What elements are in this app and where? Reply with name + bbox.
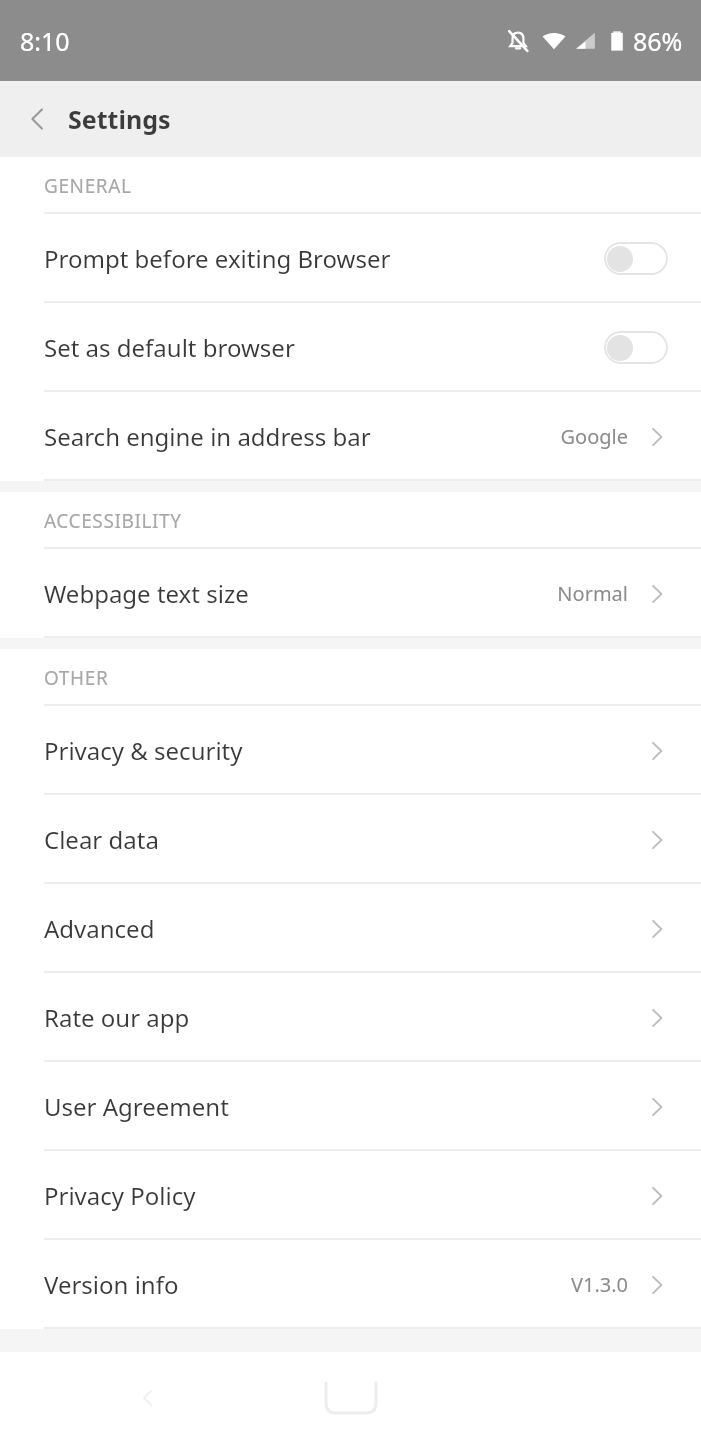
staticText: Clear data	[44, 823, 646, 856]
staticText: Prompt before exiting Browser	[44, 242, 604, 275]
button[interactable]: Rate our app	[0, 973, 701, 1062]
staticText: Version info	[44, 1268, 570, 1301]
staticText: V1.3.0	[570, 1271, 628, 1298]
button[interactable]: Home	[321, 1372, 381, 1424]
staticText: 86%	[633, 24, 683, 58]
staticText: Advanced	[44, 912, 646, 945]
button[interactable]: Clear data	[0, 795, 701, 884]
button[interactable]: Search engine in address bar	[0, 392, 701, 481]
button[interactable]: Toggle	[604, 331, 668, 364]
button[interactable]: Privacy & security	[0, 706, 701, 795]
staticText: Rate our app	[44, 1001, 646, 1034]
button[interactable]: Prompt before exiting Browser	[0, 214, 701, 303]
staticText: Google	[560, 423, 628, 450]
staticText: ACCESSIBILITY	[44, 508, 182, 534]
button[interactable]: Privacy Policy	[0, 1151, 701, 1240]
staticText: Settings	[68, 102, 171, 136]
button[interactable]: Version info	[0, 1240, 701, 1329]
staticText: OTHER	[44, 665, 109, 691]
button[interactable]: Back	[10, 91, 66, 147]
staticText: GENERAL	[44, 173, 132, 199]
staticText: Set as default browser	[44, 331, 604, 364]
button[interactable]: Set as default browser	[0, 303, 701, 392]
staticText: Search engine in address bar	[44, 420, 560, 453]
staticText: User Agreement	[44, 1090, 646, 1123]
button[interactable]: Webpage text size	[0, 549, 701, 638]
staticText: Normal	[557, 580, 628, 607]
staticText: Privacy & security	[44, 734, 646, 767]
staticText: 8:10	[20, 24, 70, 58]
button[interactable]: User Agreement	[0, 1062, 701, 1151]
staticText: Webpage text size	[44, 577, 557, 610]
button[interactable]: Toggle	[604, 242, 668, 275]
staticText: Privacy Policy	[44, 1179, 646, 1212]
button[interactable]: Advanced	[0, 884, 701, 973]
